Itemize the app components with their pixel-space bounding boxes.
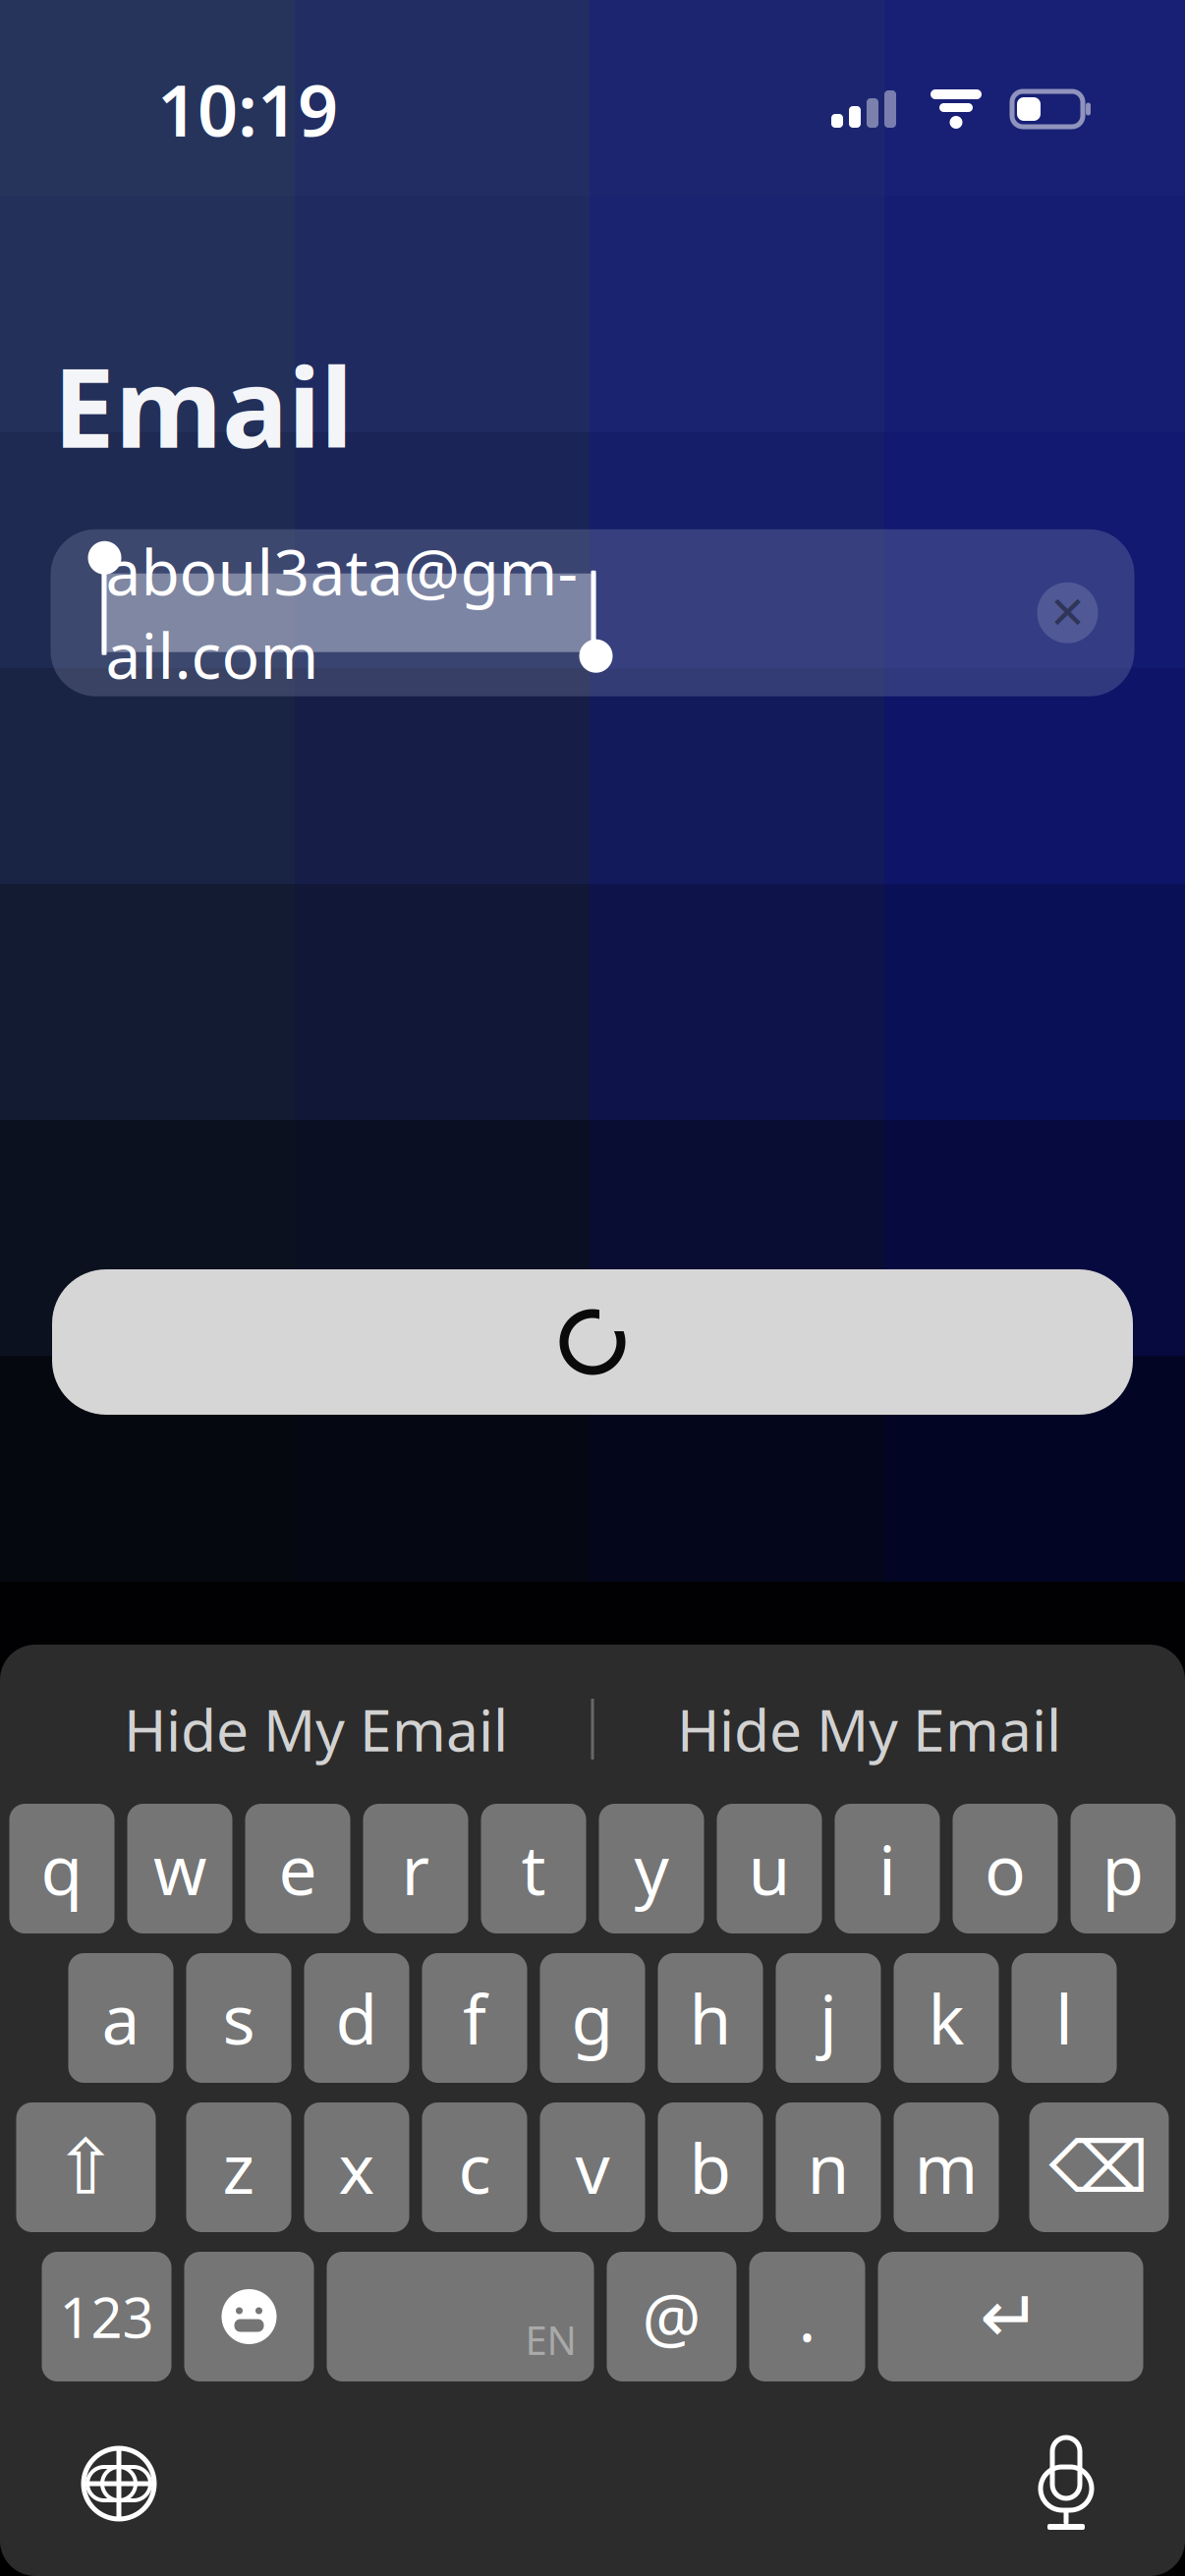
staticText: 123 [59, 2280, 154, 2353]
staticText: ⇧ [54, 2124, 118, 2210]
staticText: aboul3ata@gmail.com [106, 529, 578, 696]
staticText: u [748, 1823, 790, 1914]
button[interactable]: o [953, 1804, 1058, 1933]
button[interactable]: e [245, 1804, 350, 1933]
staticText: ⌫ [1049, 2127, 1149, 2207]
button[interactable]: a [68, 1953, 173, 2083]
staticText: l [1055, 1973, 1073, 2063]
button[interactable]: r [363, 1804, 468, 1933]
button[interactable]: c [422, 2102, 527, 2232]
button[interactable]: p [1071, 1804, 1176, 1933]
staticText: 10:19 [157, 62, 338, 156]
button[interactable]: s [186, 1953, 291, 2083]
button[interactable]: . [749, 2252, 865, 2381]
button[interactable]: v [540, 2102, 645, 2232]
button[interactable]: k [894, 1953, 999, 2083]
button[interactable]: j [776, 1953, 881, 2083]
staticText: n [807, 2122, 849, 2213]
button[interactable]: l [1012, 1953, 1117, 2083]
button[interactable]: w [127, 1804, 232, 1933]
staticText: w [153, 1823, 206, 1914]
staticText: a [102, 1973, 140, 2063]
staticText: ↵ [980, 2275, 1042, 2358]
button[interactable]: z [186, 2102, 291, 2232]
staticText: Email [53, 332, 353, 478]
button[interactable]: g [540, 1953, 645, 2083]
button[interactable]: Hide My Email [41, 1674, 591, 1784]
staticText: e [279, 1823, 317, 1914]
staticText: @ [642, 2273, 701, 2360]
button[interactable]: 123 [42, 2252, 171, 2381]
button[interactable]: i [835, 1804, 940, 1933]
staticText: . [798, 2273, 816, 2360]
button[interactable]: b [658, 2102, 763, 2232]
staticText: d [336, 1973, 378, 2063]
staticText: Hide My Email [124, 1691, 508, 1767]
button[interactable]: Next keyboard [55, 2420, 183, 2548]
button[interactable]: Space [327, 2252, 594, 2381]
staticText: m [914, 2122, 978, 2213]
staticText: EN [525, 2314, 576, 2366]
staticText: j [819, 1973, 837, 2063]
staticText: p [1102, 1823, 1144, 1914]
button[interactable]: Delete [1029, 2102, 1169, 2232]
button[interactable]: y [599, 1804, 704, 1933]
button[interactable]: @ [607, 2252, 736, 2381]
staticText: k [928, 1973, 964, 2063]
button[interactable]: n [776, 2102, 881, 2232]
staticText: h [689, 1973, 732, 2063]
staticText: z [223, 2122, 255, 2213]
staticText: i [878, 1823, 896, 1914]
button[interactable]: Shift [16, 2102, 156, 2232]
staticText: b [689, 2122, 732, 2213]
button[interactable]: q [9, 1804, 114, 1933]
button[interactable]: x [304, 2102, 409, 2232]
button[interactable]: u [717, 1804, 822, 1933]
button[interactable]: Clear text [1020, 566, 1115, 660]
staticText: ✕ [1049, 588, 1086, 638]
button[interactable]: m [894, 2102, 999, 2232]
staticText: y [634, 1823, 669, 1914]
button[interactable]: d [304, 1953, 409, 2083]
staticText: c [458, 2122, 491, 2213]
button[interactable]: f [422, 1953, 527, 2083]
button[interactable]: Return [878, 2252, 1143, 2381]
staticText: Hide My Email [677, 1691, 1061, 1767]
staticText: s [223, 1973, 255, 2063]
button[interactable]: t [481, 1804, 586, 1933]
staticText: q [41, 1823, 83, 1914]
staticText: x [339, 2122, 375, 2213]
button[interactable]: Emoji [184, 2252, 314, 2381]
staticText: o [985, 1823, 1026, 1914]
staticText: t [521, 1823, 546, 1914]
button[interactable]: Dictate [1002, 2420, 1130, 2548]
staticText: f [463, 1973, 486, 2063]
button[interactable]: Loading [52, 1269, 1133, 1415]
staticText: v [575, 2122, 610, 2213]
staticText: g [571, 1973, 614, 2063]
button[interactable]: h [658, 1953, 763, 2083]
staticText: r [401, 1823, 430, 1914]
button[interactable]: Hide My Email [594, 1674, 1144, 1784]
